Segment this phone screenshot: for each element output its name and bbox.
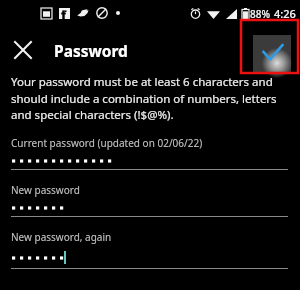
button[interactable]: Save password xyxy=(253,35,291,73)
staticText: New password xyxy=(11,183,80,197)
staticText: Current password (updated on 02/06/22) xyxy=(11,136,203,150)
button[interactable]: Current password (updated on 02/06/22) xyxy=(0,136,300,170)
staticText: 4:26 xyxy=(274,6,296,21)
button[interactable]: New password, again xyxy=(0,230,300,269)
staticText: Your password must be at least 6 charact… xyxy=(11,74,288,122)
staticText: New password, again xyxy=(11,230,112,244)
staticText: 88% xyxy=(250,7,270,21)
button[interactable]: New password xyxy=(0,183,300,217)
staticText: Password xyxy=(54,40,128,61)
button[interactable]: Close xyxy=(5,32,41,68)
